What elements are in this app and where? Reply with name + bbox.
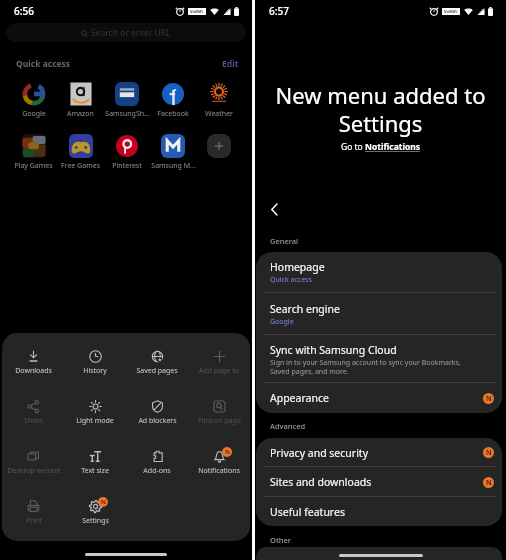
button[interactable]: Edit <box>222 58 239 70</box>
button[interactable]: Text size <box>64 449 126 476</box>
staticText: New menu added to <box>255 80 506 110</box>
button[interactable]: Saved pages <box>126 349 188 376</box>
button[interactable]: Pinterest <box>104 134 150 171</box>
staticText: Text size <box>81 466 109 476</box>
staticText: Add-ons <box>143 466 171 476</box>
button[interactable]: Amazon <box>57 82 104 119</box>
staticText: 6:57 <box>269 4 289 18</box>
staticText: SamsungSh... <box>105 109 150 119</box>
staticText: Free Games <box>61 161 100 171</box>
button[interactable]: Desktop version <box>3 449 64 476</box>
staticText: Search or enter URL <box>91 27 171 39</box>
staticText: N <box>486 394 492 404</box>
button[interactable]: History <box>64 349 126 376</box>
staticText: 6:56 <box>14 4 34 18</box>
button[interactable]: Privacy and security <box>256 438 502 467</box>
staticText: Sign in to your Samsung account to sync … <box>270 358 461 376</box>
staticText: Settings <box>82 516 109 526</box>
staticText: Privacy and security <box>270 446 368 460</box>
staticText: Share <box>24 416 43 426</box>
staticText: N <box>486 478 492 488</box>
staticText: N <box>486 448 492 458</box>
button[interactable]: Find on page <box>188 399 250 426</box>
staticText: Downloads <box>15 366 52 376</box>
button[interactable] <box>196 134 242 171</box>
staticText: Notifications <box>198 466 240 476</box>
staticText: Homepage <box>270 260 325 274</box>
button[interactable]: Sync with Samsung Cloud <box>256 335 502 383</box>
staticText: VoWiFi <box>444 9 458 14</box>
button[interactable]: Light mode <box>64 399 126 426</box>
staticText: Desktop version <box>7 466 61 476</box>
button[interactable]: Weather <box>196 82 242 119</box>
staticText: Edit <box>222 58 239 70</box>
staticText: Saved pages <box>136 366 178 376</box>
staticText: Google <box>270 317 294 327</box>
staticText: Samsung M... <box>151 161 196 171</box>
button[interactable]: Add-ons <box>126 449 188 476</box>
staticText: Play Games <box>14 161 53 171</box>
staticText: General <box>270 236 299 246</box>
button[interactable]: Notifications <box>365 141 421 153</box>
staticText: Light mode <box>76 416 114 426</box>
staticText: Advanced <box>270 421 306 431</box>
button[interactable]: Homepage <box>256 252 502 293</box>
staticText: Go to <box>341 141 365 153</box>
staticText: Facebook <box>157 109 189 119</box>
button[interactable]: Ad blockers <box>126 399 188 426</box>
button[interactable]: Appearance <box>256 383 502 413</box>
button[interactable]: Search or enter URL <box>6 23 246 42</box>
staticText: Pinterest <box>112 161 142 171</box>
staticText: Add page to <box>199 366 239 376</box>
staticText: Find on page <box>198 416 241 426</box>
staticText: Ad blockers <box>138 416 177 426</box>
button[interactable]: Google <box>10 82 57 119</box>
button[interactable]: N <box>188 449 250 476</box>
staticText: Quick access <box>270 275 312 285</box>
button[interactable]: Samsung M... <box>150 134 196 171</box>
button[interactable]: SamsungSh... <box>104 82 150 119</box>
staticText: Quick access <box>16 58 71 70</box>
button[interactable]: Free Games <box>57 134 104 171</box>
staticText: Google <box>22 109 46 119</box>
staticText: Sync with Samsung Cloud <box>270 343 397 357</box>
staticText: Weather <box>205 109 233 119</box>
button[interactable]: Search engine <box>256 293 502 335</box>
staticText: N <box>101 498 106 506</box>
staticText: Sites and downloads <box>270 475 372 489</box>
button[interactable]: Add page to <box>188 349 250 376</box>
button[interactable]: Useful features <box>256 497 502 526</box>
staticText: Search engine <box>270 302 340 316</box>
button[interactable]: Print <box>3 499 64 526</box>
staticText: N <box>225 448 230 456</box>
staticText: Amazon <box>67 109 94 119</box>
staticText: Useful features <box>270 505 345 519</box>
button[interactable]: Share <box>3 399 64 426</box>
button[interactable]: N <box>64 499 126 526</box>
staticText: History <box>83 366 107 376</box>
button[interactable]: Play Games <box>10 134 57 171</box>
staticText: VoWiFi <box>190 9 204 14</box>
staticText: Notifications <box>365 141 421 153</box>
button[interactable]: Sites and downloads <box>256 467 502 497</box>
staticText: Other <box>270 535 291 545</box>
staticText: Print <box>26 516 42 526</box>
button[interactable]: Downloads <box>3 349 64 376</box>
staticText: Settings <box>255 108 506 138</box>
button[interactable]: Back <box>264 199 284 219</box>
staticText: Appearance <box>270 391 329 405</box>
button[interactable]: Facebook <box>150 82 196 119</box>
